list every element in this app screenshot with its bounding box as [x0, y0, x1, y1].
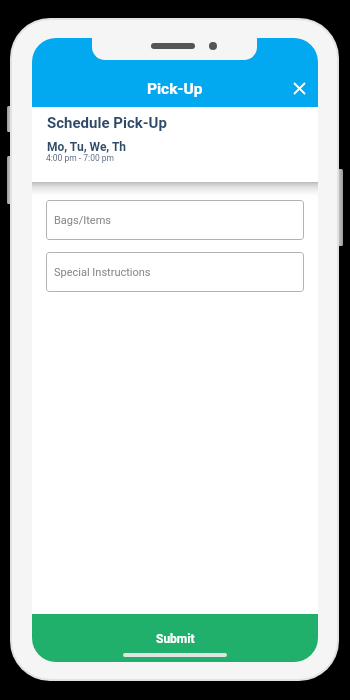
button[interactable]: Bags/Items [46, 200, 304, 240]
staticText: Pick-Up [147, 80, 203, 98]
staticText: Schedule Pick-Up [47, 114, 167, 132]
staticText: 4:00 pm - 7:00 pm [46, 153, 115, 163]
staticText: Mo, Tu, We, Th [47, 140, 127, 154]
staticText: Submit [156, 632, 195, 646]
button[interactable]: Close [284, 73, 315, 103]
staticText: Bags/Items [54, 214, 111, 227]
button[interactable]: Submit [32, 614, 318, 662]
staticText: Special Instructions [54, 266, 151, 279]
button[interactable]: Special Instructions [46, 252, 304, 292]
